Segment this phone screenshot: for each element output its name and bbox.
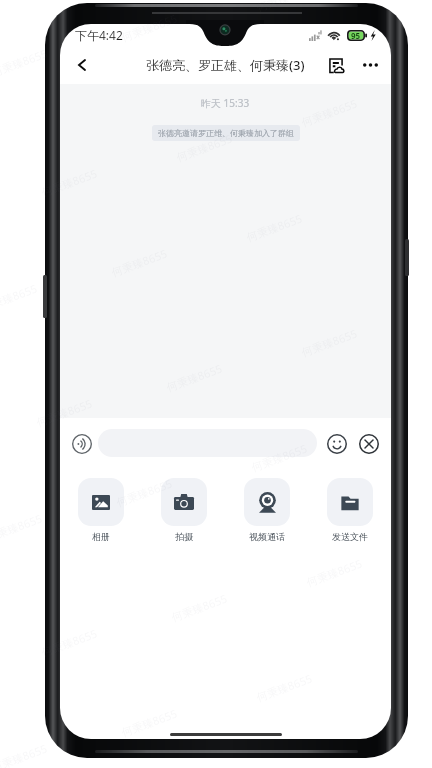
staticText: 何秉臻8655	[39, 625, 100, 660]
staticText: 发送文件	[332, 531, 368, 542]
staticText: 下午4:42	[75, 27, 123, 43]
button[interactable]: More options	[356, 52, 382, 78]
staticText: 张德亮、罗正雄、何秉臻(3)	[146, 56, 305, 74]
staticText: 何秉臻8655	[34, 395, 95, 430]
staticText: 何秉臻8655	[119, 10, 180, 45]
staticText: 何秉臻8655	[254, 0, 315, 15]
staticText: 何秉臻8655	[0, 45, 50, 80]
button[interactable]: Close panel	[359, 434, 379, 454]
staticText: 何秉臻8655	[249, 440, 310, 475]
button[interactable]: Back	[60, 48, 96, 82]
button[interactable]: Cloud document	[321, 52, 347, 78]
button[interactable]: 发送文件	[308, 474, 391, 542]
staticText: 何秉臻8655	[114, 475, 175, 510]
staticText: 昨天 15:33	[201, 96, 250, 110]
staticText: 相册	[92, 531, 110, 542]
button[interactable]: Voice message	[72, 434, 92, 454]
staticText: 视频通话	[249, 531, 285, 542]
staticText: 何秉臻8655	[174, 130, 235, 165]
staticText: 张德亮邀请罗正维、何秉臻加入了群组	[158, 128, 294, 138]
staticText: 95	[351, 30, 361, 41]
staticText: 拍摄	[175, 531, 193, 542]
button[interactable]: 拍摄	[142, 474, 225, 542]
button[interactable]: 相册	[60, 474, 142, 542]
button[interactable]: Emoji	[327, 434, 347, 454]
button[interactable]: 视频通话	[225, 474, 308, 542]
staticText: 何秉臻8655	[39, 165, 100, 200]
staticText: 何秉臻8655	[119, 705, 180, 740]
